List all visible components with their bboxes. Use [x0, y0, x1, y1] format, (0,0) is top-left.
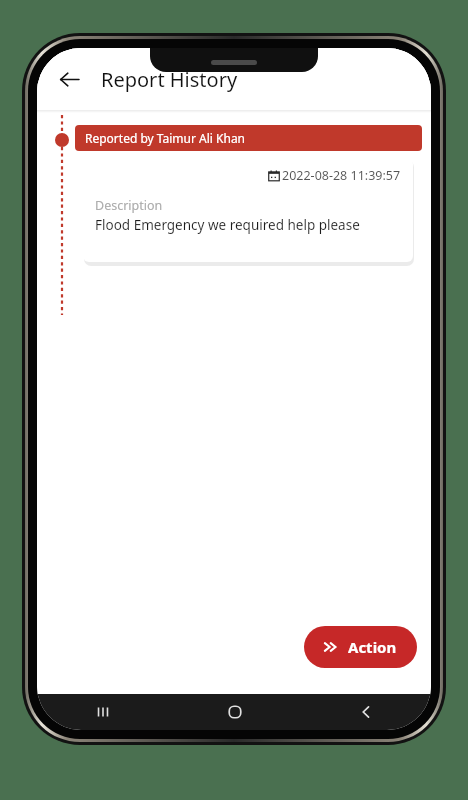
button[interactable]: Back [47, 57, 91, 101]
button[interactable]: Reported by Taimur Ali Khan [75, 125, 422, 151]
staticText: Flood Emergency we required help please [95, 216, 360, 234]
button[interactable]: Back [300, 694, 431, 730]
button[interactable]: 2022-08-28 11:39:57 [83, 158, 413, 262]
button[interactable]: Action [304, 626, 417, 668]
staticText: 2022-08-28 11:39:57 [282, 167, 401, 184]
staticText: Action [348, 637, 397, 657]
staticText: Description [95, 197, 163, 214]
staticText: Reported by Taimur Ali Khan [85, 130, 246, 146]
staticText: Report History [101, 66, 238, 93]
button[interactable]: Recent apps [37, 694, 169, 730]
button[interactable]: Home [169, 694, 300, 730]
